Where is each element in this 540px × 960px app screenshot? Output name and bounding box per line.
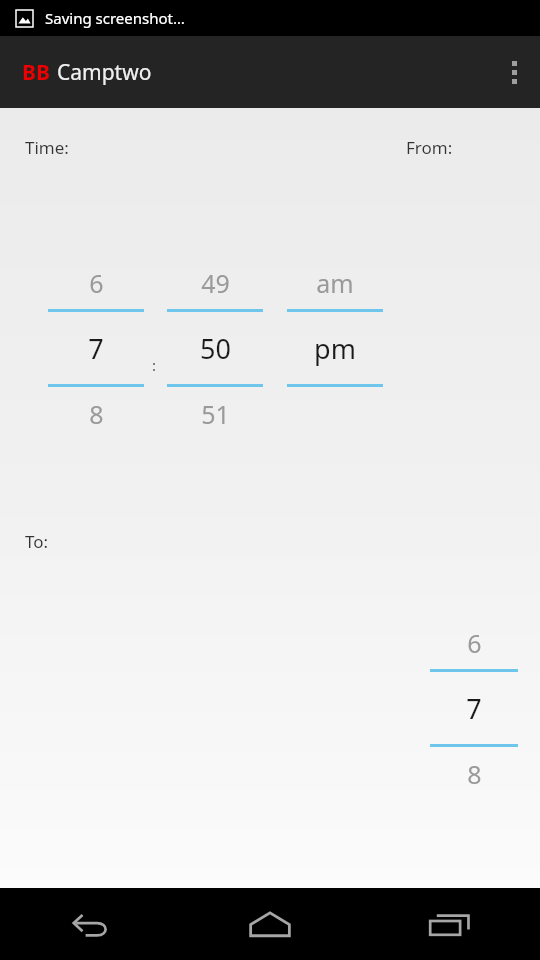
staticText: pm — [314, 330, 356, 367]
button[interactable]: Home — [180, 888, 360, 960]
staticText: Time: — [25, 136, 69, 159]
staticText: Saving screenshot… — [45, 8, 185, 28]
staticText: : — [152, 355, 157, 375]
staticText: 7 — [88, 330, 104, 367]
button[interactable]: am — [287, 256, 383, 440]
button[interactable]: 6 — [48, 256, 144, 440]
staticText: 49 — [201, 266, 230, 300]
button[interactable]: Recent apps — [360, 888, 540, 960]
staticText: 8 — [467, 757, 482, 791]
staticText: Camptwo — [57, 58, 152, 87]
staticText: 51 — [201, 397, 230, 431]
staticText: 6 — [467, 626, 482, 660]
staticText: 6 — [89, 266, 104, 300]
button[interactable]: 6 — [430, 616, 518, 800]
staticText: From: — [406, 136, 453, 159]
staticText: BB — [22, 58, 50, 87]
staticText: am — [316, 266, 354, 300]
button[interactable]: Back — [0, 888, 180, 960]
staticText: 50 — [200, 330, 231, 367]
staticText: 7 — [466, 690, 482, 727]
staticText: To: — [25, 530, 49, 553]
staticText: 8 — [89, 397, 104, 431]
button[interactable]: More options — [488, 36, 540, 108]
button[interactable]: 49 — [167, 256, 263, 440]
